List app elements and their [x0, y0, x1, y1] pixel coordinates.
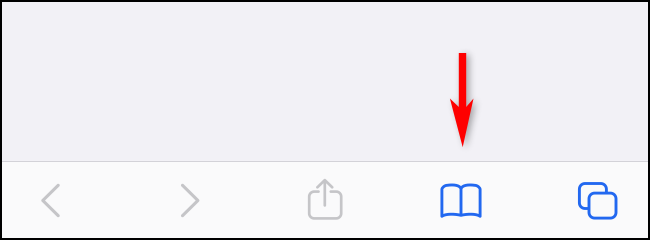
- button[interactable]: Tabs: [533, 162, 650, 239]
- button[interactable]: Share: [261, 162, 389, 239]
- button[interactable]: Forward: [126, 162, 254, 239]
- button[interactable]: Bookmarks: [397, 162, 525, 239]
- button[interactable]: Back: [0, 162, 114, 239]
